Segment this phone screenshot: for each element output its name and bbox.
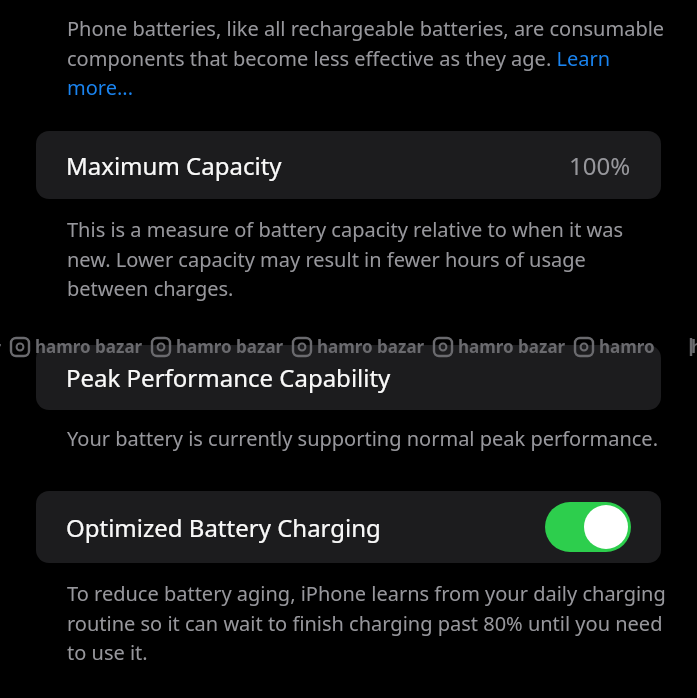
staticText: hamro bazar: [458, 335, 566, 358]
button[interactable]: Optimized Battery Charging, on: [545, 502, 631, 552]
staticText: To reduce battery aging, iPhone learns f…: [67, 580, 669, 666]
staticText: r: [0, 336, 2, 358]
staticText: hamro bazar: [317, 335, 425, 358]
staticText: This is a measure of battery capacity re…: [67, 216, 669, 302]
staticText: Phone batteries, like all rechargeable b…: [67, 15, 669, 101]
button[interactable]: Optimized Battery Charging: [36, 491, 661, 563]
button[interactable]: Maximum Capacity: [36, 131, 661, 199]
staticText: Peak Performance Capability: [66, 361, 391, 394]
button[interactable]: Peak Performance Capability: [36, 345, 661, 410]
staticText: hamro bazar: [176, 335, 284, 358]
staticText: 100%: [569, 149, 631, 182]
staticText: Maximum Capacity: [66, 149, 282, 182]
staticText: hamro bazar: [599, 335, 691, 358]
staticText: hamro bazar: [35, 335, 143, 358]
staticText: Optimized Battery Charging: [66, 511, 381, 544]
staticText: Your battery is currently supporting nor…: [67, 425, 658, 452]
